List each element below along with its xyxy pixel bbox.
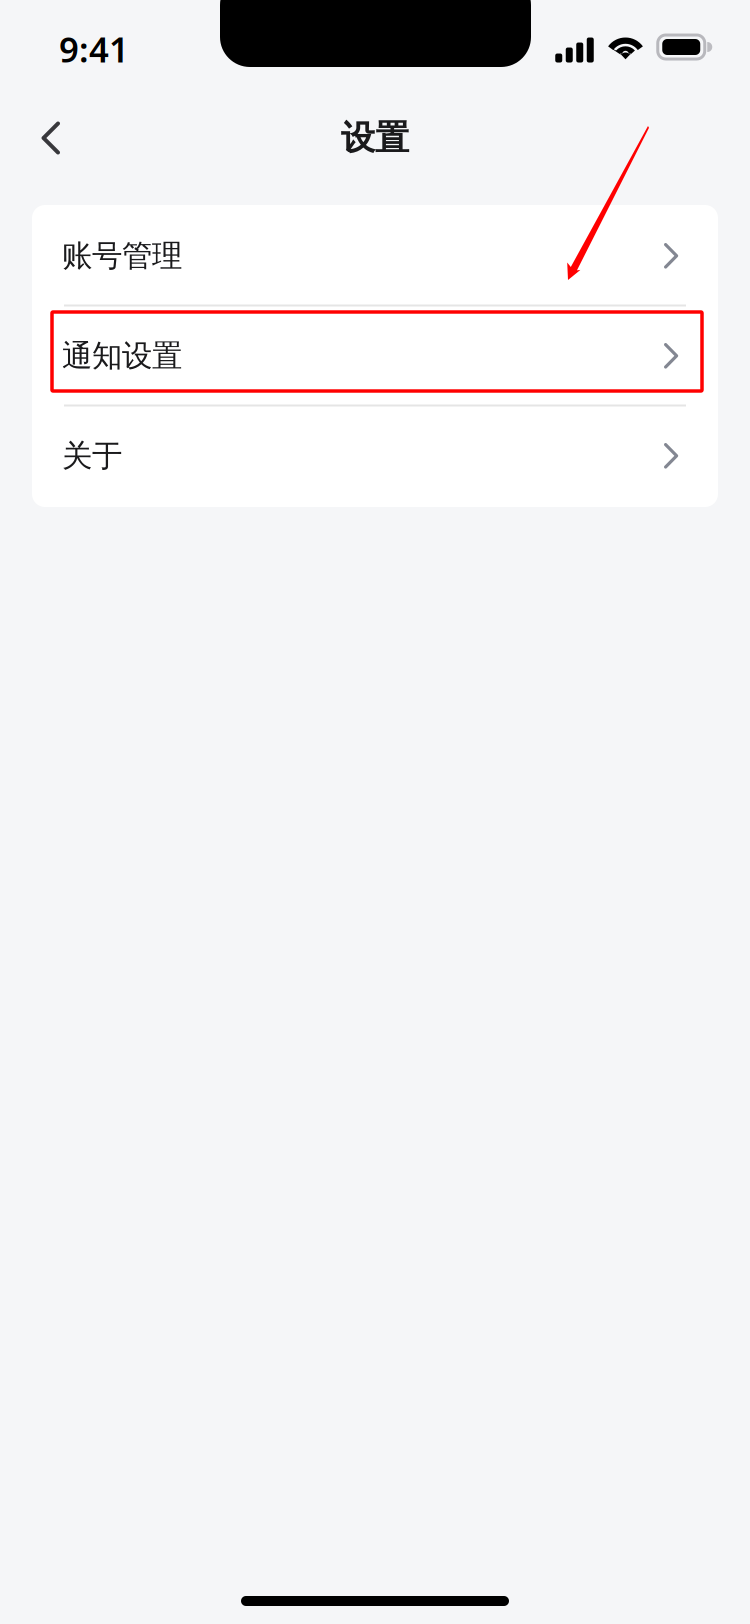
- staticText: 通知设置: [62, 337, 182, 375]
- staticText: 账号管理: [62, 237, 182, 275]
- button[interactable]: 通知设置: [32, 306, 718, 406]
- staticText: 9:41: [59, 26, 129, 72]
- button[interactable]: 账号管理: [32, 206, 718, 306]
- staticText: 设置: [341, 116, 409, 159]
- button[interactable]: Back: [0, 100, 89, 176]
- staticText: 关于: [62, 437, 122, 475]
- button[interactable]: 关于: [32, 406, 718, 506]
